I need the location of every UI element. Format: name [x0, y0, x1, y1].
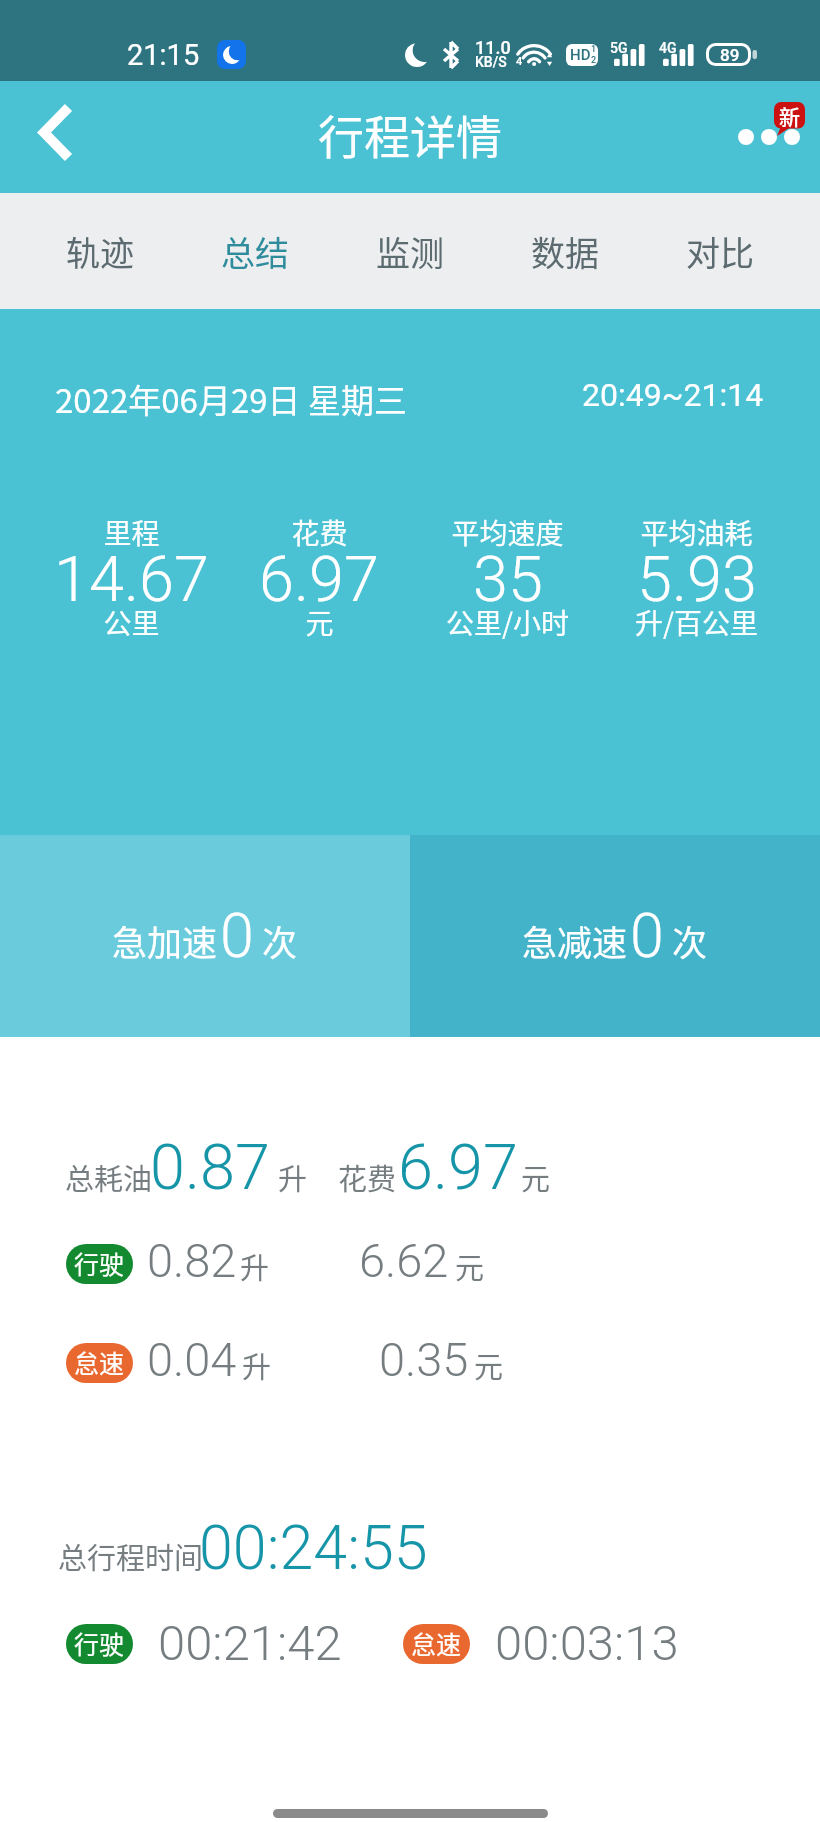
staticText: 2 [591, 55, 597, 66]
staticText: 平均油耗 [640, 512, 753, 553]
staticText: 总耗油 [65, 1156, 153, 1198]
staticText: 4 [516, 55, 523, 68]
staticText: 2022年06月29日 星期三 [55, 375, 407, 423]
staticText: 平均速度 [451, 512, 564, 553]
staticText: 元 [455, 1245, 485, 1287]
staticText: 总结 [221, 227, 289, 276]
staticText: 急加速 [112, 915, 218, 966]
staticText: 5G [610, 40, 628, 56]
button[interactable]: 对比 [642, 193, 797, 309]
staticText: 升 [278, 1156, 308, 1198]
staticText: 元 [305, 602, 334, 643]
staticText: 89 [720, 45, 740, 65]
staticText: 次 [672, 915, 708, 966]
button[interactable]: 总结 [177, 193, 332, 309]
staticText: 0.35 [379, 1332, 469, 1387]
staticText: 怠速 [411, 1625, 462, 1661]
staticText: 5.93 [637, 543, 757, 617]
staticText: 监测 [376, 227, 444, 276]
button[interactable]: More options [712, 81, 820, 193]
staticText: 行程详情 [318, 101, 502, 168]
button[interactable]: 急加速 [0, 835, 410, 1037]
staticText: 6.62 [359, 1233, 449, 1288]
staticText: 1 [591, 44, 597, 55]
staticText: 20:49~21:14 [582, 376, 764, 414]
staticText: 35 [473, 543, 543, 617]
staticText: 元 [521, 1156, 551, 1198]
staticText: 00:03:13 [495, 1615, 679, 1672]
staticText: 怠速 [74, 1344, 125, 1380]
staticText: KB/S [475, 54, 507, 70]
staticText: 公里/小时 [446, 602, 569, 643]
staticText: 0 [220, 900, 254, 971]
staticText: 升 [242, 1344, 272, 1386]
staticText: 行驶 [74, 1625, 125, 1661]
button[interactable]: Back [18, 96, 90, 168]
button[interactable]: 急减速 [410, 835, 820, 1037]
staticText: 行驶 [74, 1245, 125, 1281]
staticText: 升 [240, 1245, 270, 1287]
staticText: 花费 [291, 512, 348, 553]
staticText: 14.67 [54, 543, 209, 617]
staticText: 11.0 [475, 37, 511, 58]
staticText: 4G [659, 40, 677, 56]
button[interactable]: 数据 [487, 193, 642, 309]
button[interactable]: 监测 [332, 193, 487, 309]
staticText: HD [570, 46, 591, 64]
staticText: 0.04 [147, 1332, 237, 1387]
staticText: 次 [262, 915, 298, 966]
staticText: 0 [630, 900, 664, 971]
staticText: 00:24:55 [199, 1512, 428, 1583]
staticText: 急减速 [522, 915, 628, 966]
staticText: 总行程时间 [58, 1535, 204, 1577]
button[interactable]: 轨迹 [23, 193, 177, 309]
staticText: 元 [474, 1344, 504, 1386]
staticText: 里程 [103, 512, 160, 553]
staticText: 0.82 [147, 1233, 237, 1288]
staticText: 公里 [103, 602, 160, 643]
staticText: 轨迹 [66, 227, 134, 276]
staticText: 6.97 [259, 543, 379, 617]
staticText: 6.97 [398, 1131, 518, 1205]
staticText: 升/百公里 [635, 602, 758, 643]
staticText: 00:21:42 [158, 1615, 342, 1672]
staticText: 新 [779, 101, 800, 128]
staticText: 花费 [338, 1156, 397, 1198]
staticText: 0.87 [150, 1131, 270, 1205]
staticText: 数据 [531, 227, 599, 276]
staticText: 对比 [686, 227, 754, 276]
staticText: 21:15 [127, 38, 200, 72]
